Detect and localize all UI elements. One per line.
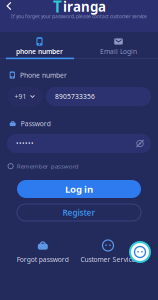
staticText: Remember password <box>17 162 79 170</box>
staticText: T <box>53 0 62 17</box>
button[interactable]: Customer Service <box>80 240 135 264</box>
staticText: Register <box>62 207 95 218</box>
staticText: Phone number <box>20 70 67 80</box>
staticText: Customer Service <box>80 255 135 264</box>
button[interactable]: Back <box>2 0 16 13</box>
button[interactable]: phone number <box>0 32 79 59</box>
staticText: iranga <box>63 0 106 16</box>
button[interactable]: Register <box>17 204 141 221</box>
button[interactable]: Remember password <box>8 162 79 170</box>
button[interactable]: Log in <box>17 180 141 198</box>
button[interactable]: Show password <box>136 139 151 147</box>
button[interactable]: Email Login <box>79 32 158 59</box>
staticText: Email Login <box>100 47 137 56</box>
staticText: Forgot password <box>17 255 69 264</box>
staticText: Password <box>21 119 51 128</box>
staticText: phone number <box>16 47 63 56</box>
button[interactable]: Forgot password <box>17 240 69 264</box>
button[interactable]: Customer service <box>128 240 152 264</box>
button[interactable]: +91 <box>7 87 42 106</box>
staticText: If you forget your password, please cont… <box>11 13 147 20</box>
staticText: 8905733356 <box>55 92 95 101</box>
staticText: •••••• <box>16 139 34 148</box>
staticText: +91 <box>14 92 26 101</box>
staticText: Log in <box>65 182 93 196</box>
